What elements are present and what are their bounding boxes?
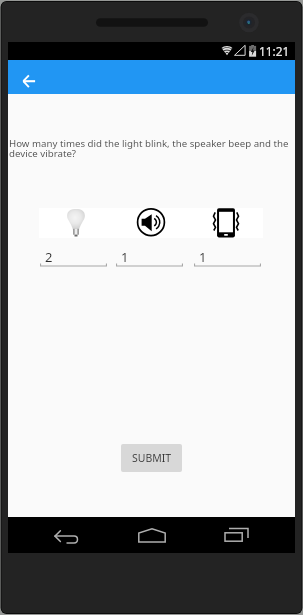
button[interactable]: Home	[138, 528, 166, 545]
staticText: How many times did the light blink, the …	[9, 137, 293, 160]
button[interactable]: Back	[53, 528, 81, 544]
staticText: SUBMIT	[132, 451, 172, 465]
button[interactable]: Back	[17, 75, 37, 92]
button[interactable]: SUBMIT	[121, 444, 182, 472]
staticText: 2	[45, 248, 53, 266]
staticText: 1	[199, 248, 207, 266]
button[interactable]: 1	[194, 249, 261, 267]
button[interactable]: Recent apps	[224, 527, 253, 545]
staticText: 1	[121, 248, 129, 266]
button[interactable]: 1	[116, 249, 183, 267]
button[interactable]: 2	[40, 249, 107, 267]
staticText: 11:21	[259, 43, 290, 59]
